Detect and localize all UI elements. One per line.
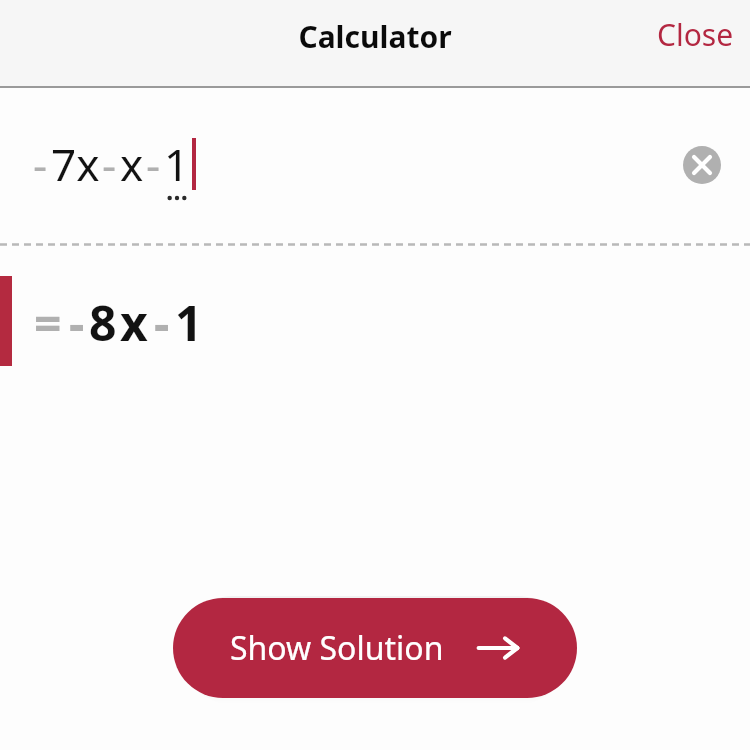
staticText: x <box>120 134 144 194</box>
staticText: 1 <box>164 134 190 194</box>
staticText: 8 <box>89 290 117 355</box>
staticText: 7x <box>51 134 100 194</box>
staticText: x <box>120 290 148 355</box>
staticText: - <box>33 134 48 194</box>
staticText: - <box>154 290 170 355</box>
button[interactable]: Show Solution <box>173 598 577 698</box>
staticText: - <box>69 290 85 355</box>
staticText: - <box>102 134 117 194</box>
staticText: 1 <box>175 290 203 355</box>
staticText: Calculator <box>0 16 750 57</box>
button[interactable]: Clear expression <box>680 143 724 187</box>
staticText: - <box>146 134 161 194</box>
staticText: Close <box>657 14 734 55</box>
button[interactable]: Close <box>641 8 750 61</box>
button[interactable]: = <box>0 246 750 394</box>
staticText: Show Solution <box>230 626 444 670</box>
staticText: = <box>34 290 62 355</box>
